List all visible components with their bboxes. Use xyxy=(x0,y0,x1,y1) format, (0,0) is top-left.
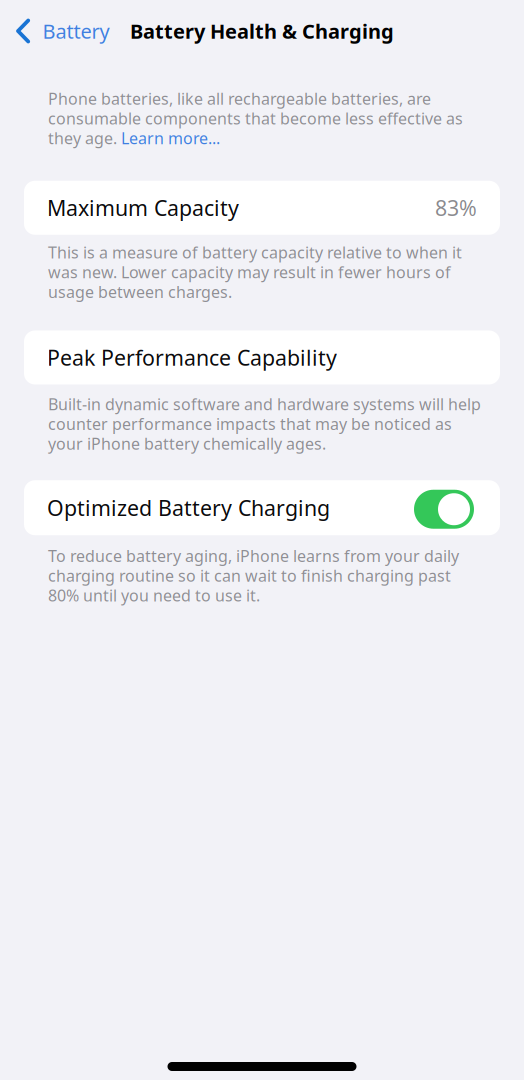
button[interactable]: Optimized Battery Charging xyxy=(414,487,477,529)
staticText: 83% xyxy=(435,194,477,222)
staticText: Battery xyxy=(42,18,109,44)
button[interactable]: Battery xyxy=(0,6,119,56)
staticText: Maximum Capacity xyxy=(47,194,239,222)
staticText: To reduce battery aging, iPhone learns f… xyxy=(48,545,459,606)
staticText: Built-in dynamic software and hardware s… xyxy=(48,393,481,454)
button[interactable]: Peak Performance Capability xyxy=(0,330,524,384)
staticText: This is a measure of battery capacity re… xyxy=(48,242,462,302)
staticText: Battery Health & Charging xyxy=(130,18,394,44)
staticText: Optimized Battery Charging xyxy=(47,494,330,522)
staticText: Phone batteries, like all rechargeable b… xyxy=(48,88,463,149)
staticText: Peak Performance Capability xyxy=(47,343,337,372)
